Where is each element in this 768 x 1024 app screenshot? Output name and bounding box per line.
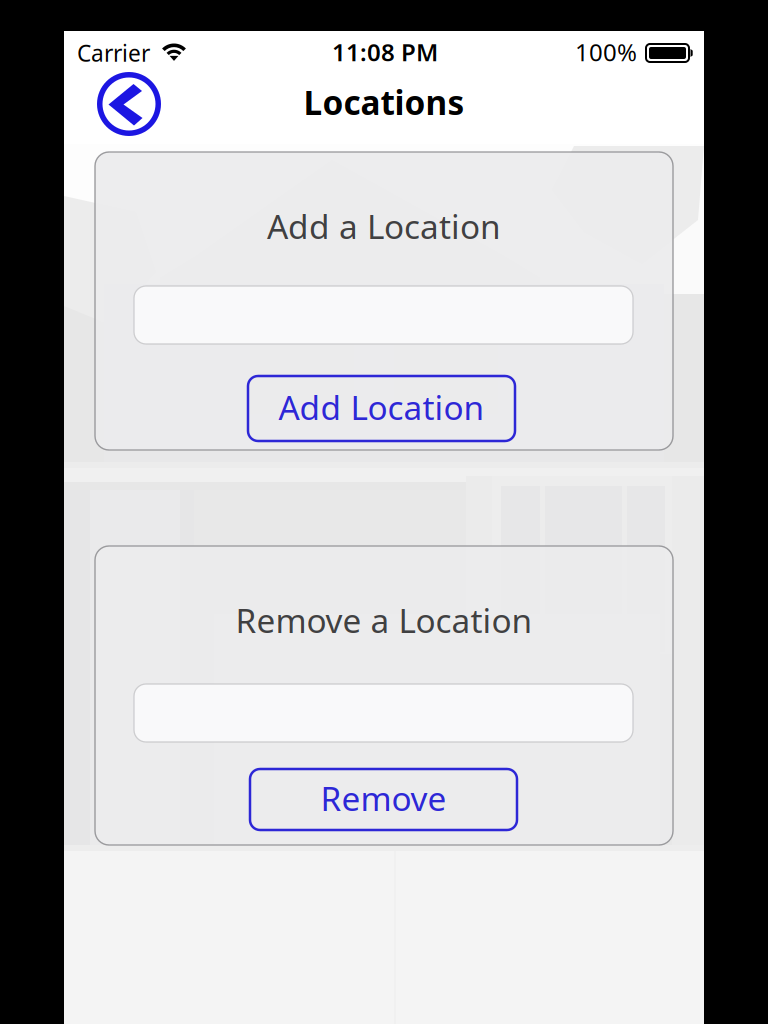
button[interactable]: Back [97, 72, 161, 136]
staticText: Remove a Location [235, 598, 532, 642]
staticText: Locations [303, 80, 464, 124]
button[interactable]: Location name [134, 286, 633, 344]
button[interactable]: Remove [220, 769, 547, 830]
button[interactable]: Location to remove [134, 684, 633, 742]
staticText: Carrier [77, 38, 150, 68]
staticText: Add a Location [267, 204, 501, 248]
staticText: 11:08 PM [332, 36, 438, 68]
staticText: 100% [575, 36, 637, 68]
button[interactable]: Add Location [218, 376, 545, 441]
staticText: Add Location [278, 385, 484, 429]
staticText: Remove [320, 776, 446, 820]
